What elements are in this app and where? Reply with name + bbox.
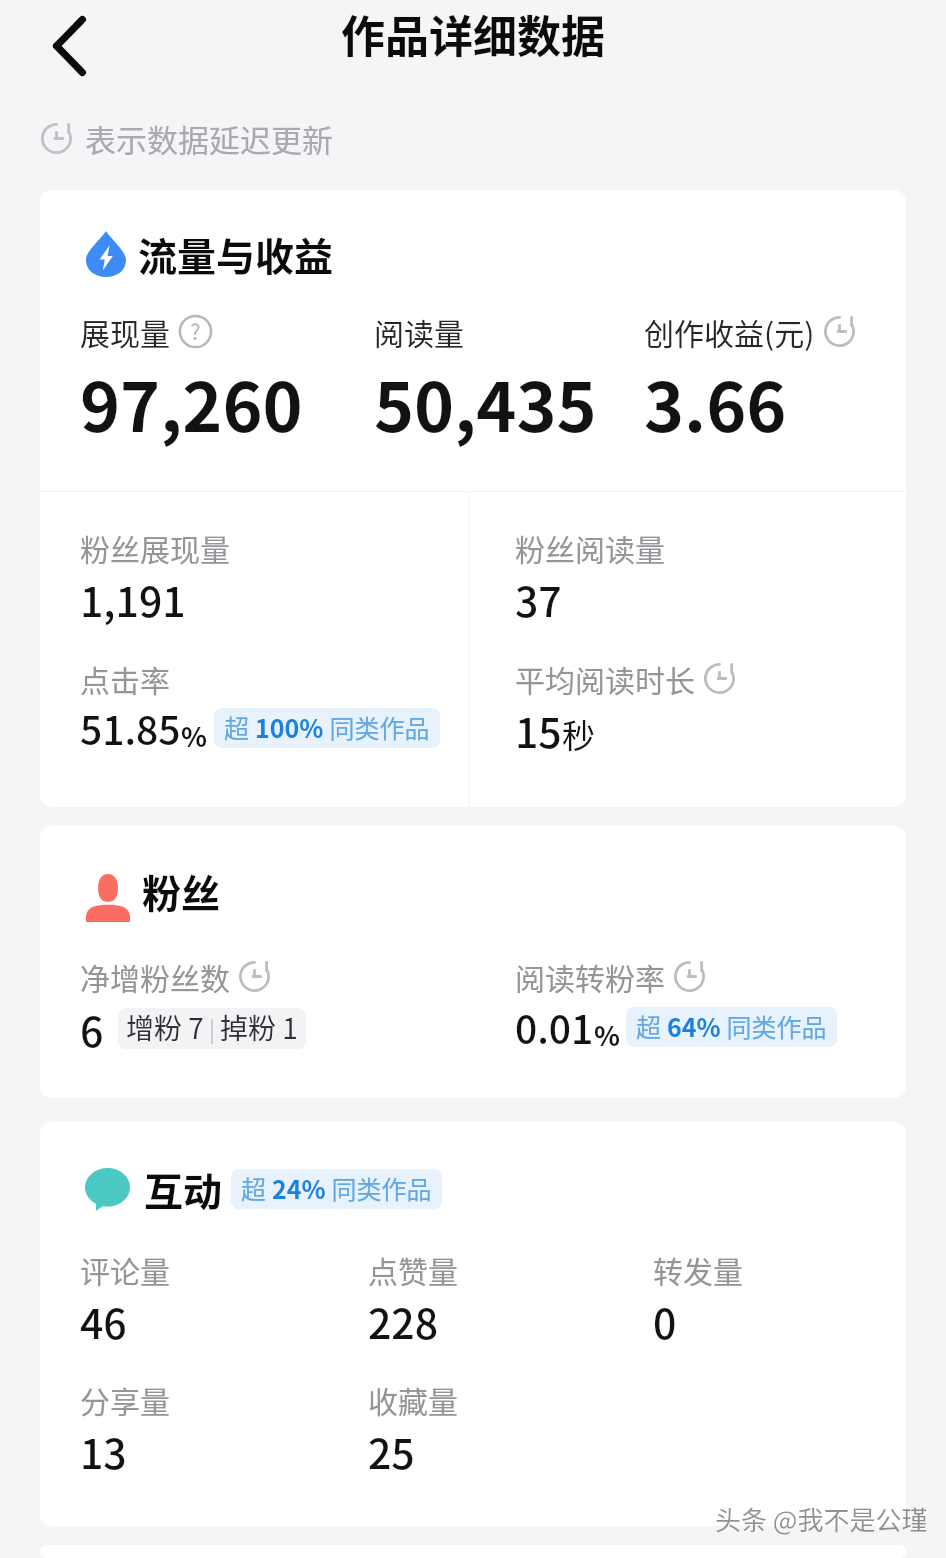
staticText: %	[181, 716, 208, 755]
button[interactable]: 互动	[40, 1122, 906, 1526]
staticText: 同类作品	[721, 1008, 827, 1044]
staticText: 点击率	[80, 657, 170, 700]
staticText: 同类作品	[324, 709, 430, 745]
staticText: 点赞量	[368, 1248, 458, 1291]
button[interactable]: 超	[231, 1169, 442, 1209]
staticText: 净增粉丝数	[80, 955, 230, 998]
staticText: 平均阅读时长	[515, 657, 695, 700]
staticText: 0.01	[515, 999, 594, 1055]
staticText: 创作收益(元)	[644, 310, 815, 353]
button[interactable]: 超	[214, 708, 440, 748]
staticText: 掉粉 1	[220, 1008, 298, 1048]
staticText: |	[204, 1012, 220, 1044]
button[interactable]: Back	[41, 6, 97, 86]
staticText: 收藏量	[368, 1378, 458, 1421]
staticText: 转发量	[653, 1248, 743, 1291]
staticText: 表示数据延迟更新	[85, 116, 333, 161]
staticText: 46	[80, 1291, 127, 1350]
staticText: 228	[368, 1291, 439, 1350]
staticText: 3.66	[644, 353, 787, 451]
staticText: 分享量	[80, 1378, 170, 1421]
staticText: 流量与收益	[138, 226, 334, 282]
staticText: 超	[636, 1008, 667, 1044]
staticText: 64%	[667, 1008, 721, 1044]
staticText: 互动	[144, 1161, 223, 1217]
button[interactable]: 表示数据延迟更新	[40, 107, 333, 169]
staticText: 头条 @我不是公瑾	[715, 1500, 928, 1538]
staticText: 展现量	[80, 310, 170, 353]
staticText: 阅读转粉率	[515, 955, 665, 998]
staticText: 15	[515, 700, 562, 759]
staticText: ?	[190, 315, 201, 346]
staticText: 6	[80, 999, 104, 1058]
staticText: 97,260	[80, 353, 303, 451]
staticText: 作品详细数据	[341, 2, 605, 66]
button[interactable]: 粉丝	[40, 826, 906, 1098]
button[interactable]: 超	[626, 1007, 837, 1047]
button[interactable]: 流量与收益	[40, 190, 906, 807]
staticText: 超	[224, 709, 255, 745]
staticText: 粉丝展现量	[80, 526, 230, 569]
staticText: 50,435	[374, 353, 597, 451]
button[interactable]: What is this metric	[178, 314, 213, 349]
staticText: 24%	[272, 1170, 326, 1206]
staticText: 0	[653, 1291, 677, 1350]
staticText: 1,191	[80, 569, 186, 628]
staticText: 秒	[562, 710, 595, 758]
staticText: 粉丝阅读量	[515, 526, 665, 569]
staticText: 100%	[255, 709, 324, 745]
staticText: 51.85	[80, 700, 181, 756]
staticText: 同类作品	[326, 1170, 432, 1206]
button[interactable]: 增粉 7	[118, 1008, 306, 1049]
staticText: 评论量	[80, 1248, 170, 1291]
staticText: 25	[368, 1421, 415, 1480]
staticText: 37	[515, 569, 562, 628]
staticText: 超	[241, 1170, 272, 1206]
staticText: 粉丝	[142, 863, 221, 919]
staticText: 增粉 7	[126, 1008, 204, 1048]
staticText: %	[594, 1015, 621, 1054]
staticText: 13	[80, 1421, 127, 1480]
staticText: 阅读量	[374, 310, 464, 353]
